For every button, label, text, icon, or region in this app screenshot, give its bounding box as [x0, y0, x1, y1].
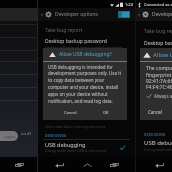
button[interactable]: Desktop back — [136, 38, 172, 48]
button[interactable]: Cancel — [140, 106, 171, 118]
staticText: OK — [103, 110, 109, 115]
button[interactable]: Toggle developer options — [118, 11, 130, 18]
button[interactable]: Recents — [107, 158, 121, 172]
staticText: Cancel — [64, 110, 77, 115]
staticText: The comput fingerprint is 92:41:7A:66 F4… — [146, 65, 172, 91]
button[interactable]: Take bug report — [38, 24, 135, 37]
staticText: DEBUGGING — [144, 132, 166, 137]
button[interactable]: Recents — [12, 158, 26, 172]
staticText: Take bug repo — [144, 28, 172, 35]
staticText: DEBUGGING — [45, 133, 67, 138]
button[interactable]: Developer o — [136, 8, 172, 21]
button[interactable]: Back — [52, 158, 66, 172]
staticText: Debug mode whe — [144, 147, 172, 152]
staticText: USB debugging — [45, 141, 86, 148]
staticText: sticky state about running processes — [45, 124, 106, 129]
staticText: Desktop backup password — [45, 38, 107, 45]
staticText: ugger — [4, 134, 16, 139]
button[interactable]: OK — [88, 106, 123, 119]
staticText: Desktop full backups aren't currently pr… — [45, 45, 123, 50]
button[interactable]: Home — [80, 158, 94, 172]
staticText: on #1 — [21, 131, 32, 136]
staticText: 1:24 — [125, 2, 133, 7]
staticText: Developer o — [152, 11, 172, 18]
button[interactable]: Developer options — [38, 8, 135, 21]
staticText: USB debugging is intended for developmen… — [48, 64, 122, 104]
staticText: Allow U — [153, 51, 172, 59]
button[interactable]: USB debugging — [38, 140, 135, 154]
button[interactable]: Always al — [146, 93, 172, 99]
staticText: Connected as a m — [144, 2, 172, 7]
staticText: Allow USB debugging? — [59, 51, 112, 58]
staticText: Debug mode when USB is connected — [45, 148, 106, 153]
staticText: Developer options — [55, 11, 99, 18]
staticText: Always al — [154, 93, 172, 99]
button[interactable]: Take bug repo — [136, 25, 172, 38]
button[interactable]: Cancel — [53, 106, 88, 119]
button[interactable]: Desktop backup password — [38, 37, 135, 50]
button[interactable]: Back — [152, 158, 166, 172]
staticText: Take bug report — [45, 27, 83, 34]
staticText: Desktop back — [144, 40, 172, 47]
staticText: Cancel — [148, 109, 163, 115]
staticText: USB debuggin — [144, 139, 172, 147]
